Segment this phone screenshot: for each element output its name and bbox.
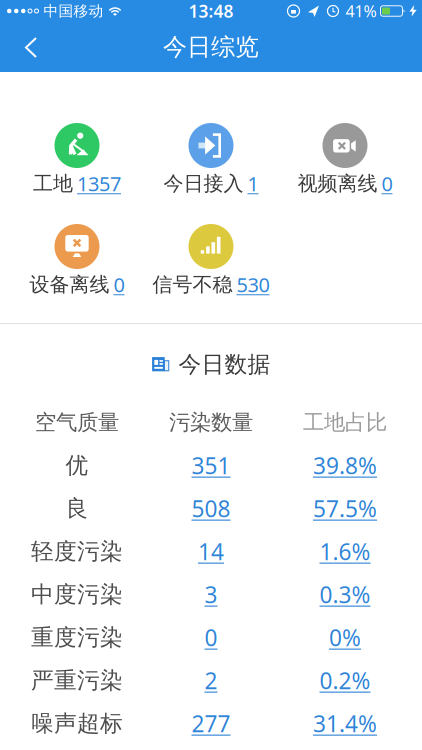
button[interactable]: 0.3% [268,579,422,609]
staticText: 3 [204,579,217,609]
staticText: 视频离线 [297,171,377,196]
button[interactable]: 视频离线 [297,123,392,192]
staticText: 0 [381,170,392,197]
staticText: 重度污染 [31,624,123,651]
staticText: 工地占比 [303,409,387,436]
staticText: 0 [113,271,124,298]
button[interactable]: 508 [154,493,268,523]
button[interactable]: 2 [154,665,268,695]
button[interactable]: 设备离线 [29,224,124,293]
staticText: 13:48 [188,0,233,22]
staticText: 优 [65,452,88,479]
staticText: 严重污染 [31,667,123,694]
staticText: 1.6% [319,536,370,566]
staticText: 设备离线 [29,272,109,297]
staticText: 277 [191,708,230,738]
staticText: 今日综览 [163,32,259,62]
staticText: 0.3% [319,579,370,609]
button[interactable]: Back [0,31,50,62]
staticText: 工地 [33,171,73,196]
staticText: 530 [236,271,269,298]
staticText: 良 [65,495,88,522]
staticText: 39.8% [313,450,377,480]
button[interactable]: 信号不稳 [152,224,269,293]
staticText: 轻度污染 [31,538,123,565]
staticText: 空气质量 [35,409,119,436]
button[interactable]: 14 [154,536,268,566]
button[interactable]: 工地 [33,123,121,192]
button[interactable]: 351 [154,450,268,480]
button[interactable]: 277 [154,708,268,738]
staticText: 信号不稳 [152,272,232,297]
staticText: 污染数量 [169,409,253,436]
staticText: 今日数据 [178,351,270,378]
button[interactable]: 57.5% [268,493,422,523]
staticText: 中度污染 [31,581,123,608]
button[interactable]: 今日接入 [163,123,258,192]
staticText: 1357 [77,170,121,197]
staticText: 14 [198,536,224,566]
button[interactable]: 1.6% [268,536,422,566]
staticText: 41% [345,0,376,22]
staticText: 57.5% [313,493,377,523]
staticText: 1 [247,170,258,197]
staticText: 中国移动 [43,2,103,20]
staticText: 0 [204,622,217,652]
staticText: 噪声超标 [31,710,123,737]
staticText: 31.4% [313,708,377,738]
staticText: 0% [329,622,361,652]
staticText: 2 [204,665,217,695]
button[interactable]: 0.2% [268,665,422,695]
button[interactable]: 3 [154,579,268,609]
button[interactable]: 0 [154,622,268,652]
staticText: 今日接入 [163,171,243,196]
staticText: 0.2% [319,665,370,695]
button[interactable]: 0% [268,622,422,652]
staticText: 508 [191,493,230,523]
button[interactable]: 31.4% [268,708,422,738]
staticText: 351 [191,450,230,480]
button[interactable]: 39.8% [268,450,422,480]
